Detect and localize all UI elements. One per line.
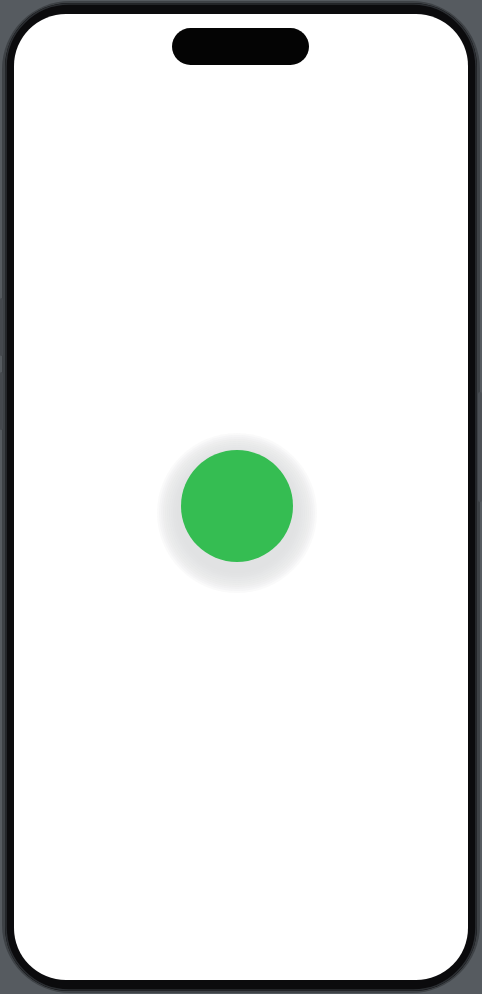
- button[interactable]: Status indicator: [181, 450, 293, 562]
